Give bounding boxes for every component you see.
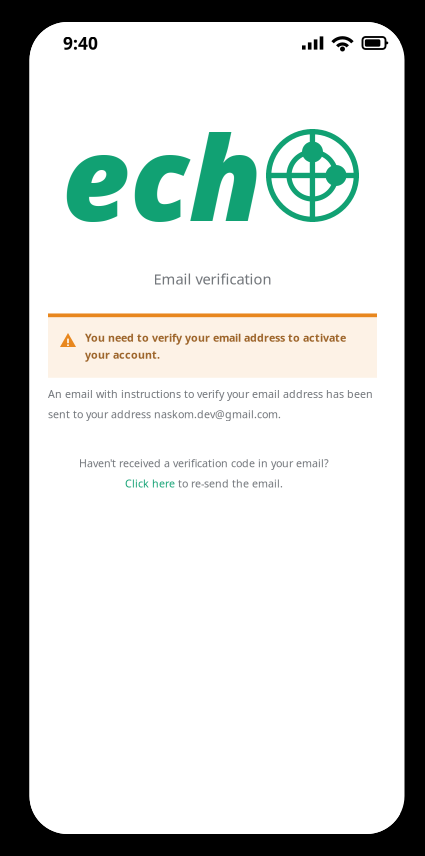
staticText: Haven't received a verification code in …	[79, 456, 329, 470]
staticText: ech	[62, 98, 262, 253]
button[interactable]: Click here	[125, 476, 283, 490]
staticText: to re-send the email.	[175, 476, 283, 490]
staticText: An email with instructions to verify you…	[48, 387, 373, 401]
staticText: sent to your address naskom.dev@gmail.co…	[48, 407, 281, 421]
staticText: 9:40	[63, 31, 98, 54]
staticText: your account.	[85, 348, 160, 362]
staticText: Click here	[125, 476, 175, 490]
staticText: Email verification	[153, 269, 271, 288]
staticText: You need to verify your email address to…	[85, 330, 346, 345]
